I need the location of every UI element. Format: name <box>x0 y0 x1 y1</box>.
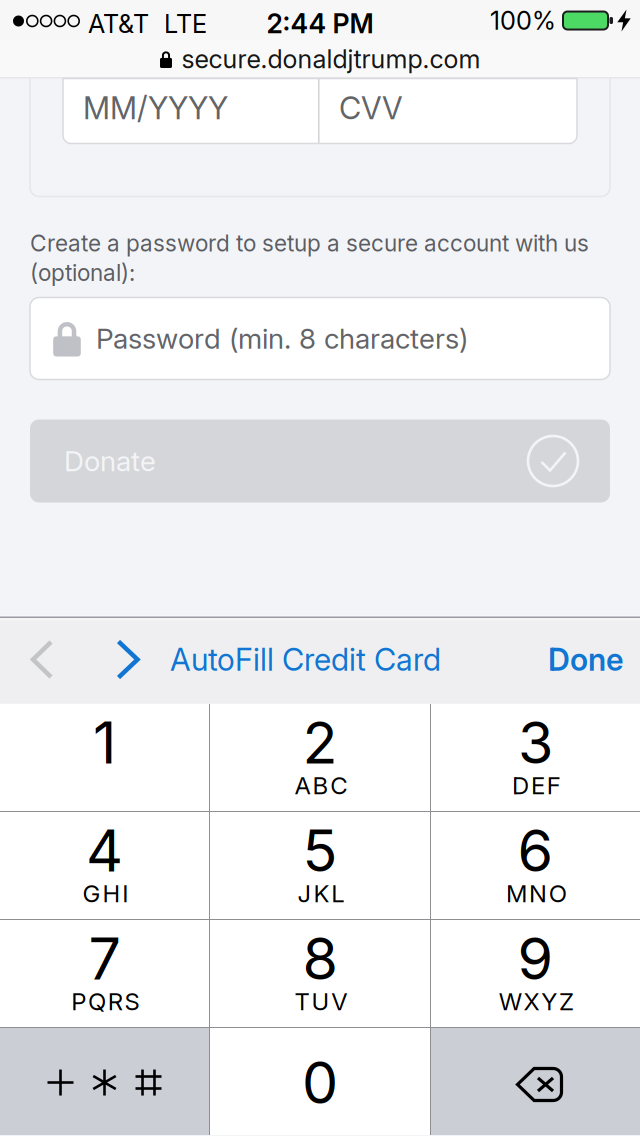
button[interactable]: 4 <box>0 812 209 919</box>
staticText: PQRS <box>71 987 140 1016</box>
staticText: WXYZ <box>499 987 574 1016</box>
button[interactable]: Address: secure.donaldjtrump.com <box>0 40 640 78</box>
button[interactable]: Donate <box>30 419 610 502</box>
staticText: 9 <box>517 924 553 993</box>
button[interactable]: 9 <box>431 920 640 1027</box>
button[interactable]: 8 <box>210 920 430 1027</box>
staticText: GHI <box>83 879 128 908</box>
button[interactable]: 1 <box>0 704 209 811</box>
staticText: 5 <box>302 816 337 885</box>
staticText: 7 <box>88 924 120 993</box>
staticText: 2:44 PM <box>266 7 373 40</box>
staticText: 8 <box>302 924 337 993</box>
staticText: 2 <box>302 708 337 777</box>
staticText: 100% <box>490 5 556 36</box>
staticText: secure.donaldjtrump.com <box>181 44 480 74</box>
button[interactable]: Delete <box>431 1028 640 1135</box>
staticText: 4 <box>86 816 123 885</box>
staticText: AutoFill Credit Card <box>170 641 441 678</box>
staticText: LTE <box>164 8 207 39</box>
button[interactable]: Previous field <box>0 616 84 702</box>
staticText: Donate <box>64 444 156 478</box>
staticText: JKL <box>298 879 344 908</box>
staticText: (optional): <box>30 259 135 286</box>
staticText: DEF <box>512 771 561 800</box>
button[interactable]: 5 <box>210 812 430 919</box>
button[interactable]: 7 <box>0 920 209 1027</box>
button[interactable]: Symbols <box>0 1028 209 1135</box>
button[interactable]: 6 <box>431 812 640 919</box>
staticText: 6 <box>517 816 553 885</box>
button[interactable]: Done <box>548 616 640 702</box>
staticText: 1 <box>93 708 116 777</box>
staticText: 3 <box>518 708 553 777</box>
button[interactable]: 3 <box>431 704 640 811</box>
staticText: CVV <box>339 89 403 127</box>
button[interactable]: 2 <box>210 704 430 811</box>
button[interactable]: Next field <box>85 616 171 702</box>
staticText: 0 <box>302 1048 338 1117</box>
staticText: Password (min. 8 characters) <box>96 322 468 355</box>
button[interactable]: AutoFill Credit Card <box>170 616 441 702</box>
staticText: AT&T <box>88 8 149 39</box>
staticText: TUV <box>295 987 347 1016</box>
staticText: MNO <box>506 879 567 908</box>
staticText: MM/YYYY <box>83 89 228 127</box>
staticText: ABC <box>295 771 347 800</box>
button[interactable]: 0 <box>210 1028 430 1135</box>
staticText: Done <box>548 641 624 678</box>
staticText: Create a password to setup a secure acco… <box>30 229 589 257</box>
